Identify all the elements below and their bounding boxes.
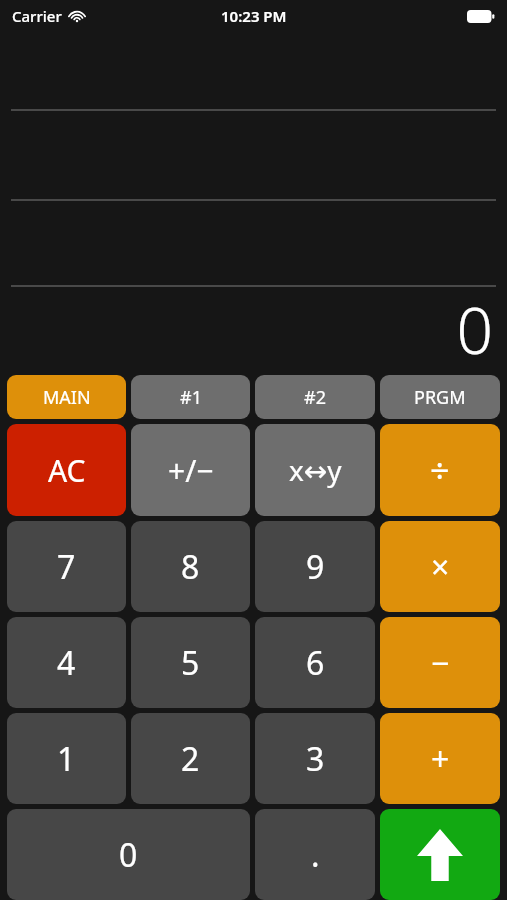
button[interactable]: 6 xyxy=(255,617,375,708)
button[interactable]: AC xyxy=(7,424,126,516)
staticText: − xyxy=(431,641,450,685)
button[interactable]: 7 xyxy=(7,521,126,612)
staticText: PRGM xyxy=(414,385,466,410)
button[interactable]: 3 xyxy=(255,713,375,804)
button[interactable]: #2 xyxy=(255,375,375,419)
button[interactable]: #1 xyxy=(131,375,250,419)
staticText: 7 xyxy=(57,545,76,589)
button[interactable]: . xyxy=(255,809,375,900)
button[interactable]: − xyxy=(380,617,500,708)
button[interactable]: x↔y xyxy=(255,424,375,516)
staticText: 2 xyxy=(181,737,200,781)
staticText: x↔y xyxy=(289,451,342,489)
button[interactable]: PRGM xyxy=(380,375,500,419)
button[interactable]: ÷ xyxy=(380,424,500,516)
staticText: #1 xyxy=(180,385,202,410)
button[interactable]: 0 xyxy=(7,809,250,900)
staticText: +/− xyxy=(168,450,214,491)
button[interactable]: MAIN xyxy=(7,375,126,419)
staticText: 1 xyxy=(57,737,76,781)
button[interactable]: +/− xyxy=(131,424,250,516)
button[interactable]: + xyxy=(380,713,500,804)
staticText: 10:23 PM xyxy=(221,6,287,26)
button[interactable]: 9 xyxy=(255,521,375,612)
button[interactable]: × xyxy=(380,521,500,612)
staticText: AC xyxy=(48,450,86,491)
staticText: + xyxy=(431,737,450,781)
button[interactable]: Enter xyxy=(380,809,500,900)
staticText: 0 xyxy=(456,286,493,373)
button[interactable]: 2 xyxy=(131,713,250,804)
button[interactable]: 8 xyxy=(131,521,250,612)
staticText: 9 xyxy=(306,545,325,589)
staticText: Carrier xyxy=(12,6,62,26)
staticText: 0 xyxy=(119,833,138,877)
staticText: 6 xyxy=(306,641,325,685)
staticText: 4 xyxy=(57,641,76,685)
staticText: 8 xyxy=(181,545,200,589)
staticText: ÷ xyxy=(430,447,450,493)
staticText: 3 xyxy=(306,737,325,781)
staticText: #2 xyxy=(304,385,326,410)
staticText: MAIN xyxy=(43,385,91,410)
staticText: × xyxy=(431,545,450,589)
button[interactable]: 4 xyxy=(7,617,126,708)
staticText: . xyxy=(311,833,320,877)
staticText: 5 xyxy=(181,641,200,685)
button[interactable]: 5 xyxy=(131,617,250,708)
button[interactable]: 1 xyxy=(7,713,126,804)
